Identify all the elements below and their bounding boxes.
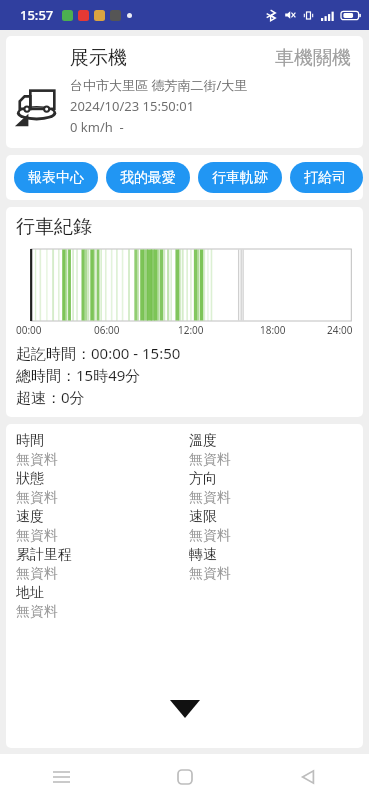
staticText: 行車軌跡 [212,169,268,187]
button[interactable]: Home [123,754,246,800]
staticText: 打給司機 [304,169,349,187]
button[interactable]: 打給司機 [290,162,363,193]
staticText: 總時間：15時49分 [16,365,141,385]
staticText: 溫度 [189,432,217,450]
staticText: 無資料 [16,489,58,507]
staticText: 超速：0分 [16,387,85,407]
staticText: 無資料 [16,451,58,469]
staticText: 06:00 [94,323,120,337]
staticText: 無資料 [16,603,58,621]
staticText: 0 km/h - [70,118,124,136]
staticText: 報表中心 [28,169,84,187]
staticText: 18:00 [260,323,286,337]
staticText: 無資料 [16,527,58,545]
button[interactable]: 我的最愛 [106,162,190,193]
staticText: 無資料 [189,451,231,469]
staticText: 展示機 [70,46,127,70]
button[interactable]: 行車軌跡 [198,162,282,193]
staticText: 累計里程 [16,546,72,564]
staticText: 15:57 [20,6,54,24]
staticText: 轉速 [189,546,217,564]
staticText: 車機關機 [275,46,351,70]
other: Vehicle [14,82,62,130]
staticText: 狀態 [16,470,44,488]
staticText: 24:00 [327,323,353,337]
staticText: 2024/10/23 15:50:01 [70,97,195,115]
button[interactable]: 報表中心 [14,162,98,193]
staticText: 12:00 [178,323,204,337]
staticText: 方向 [189,470,217,488]
staticText: 行車紀錄 [16,215,92,239]
staticText: 無資料 [16,565,58,583]
staticText: 我的最愛 [120,169,176,187]
button[interactable]: Back [246,754,369,800]
staticText: 無資料 [189,527,231,545]
staticText: 00:00 [16,323,42,337]
staticText: 起訖時間：00:00 - 15:50 [16,343,181,363]
other: Expand [170,700,200,718]
staticText: 時間 [16,432,44,450]
staticText: 台中市大里區 德芳南二街/大里 [70,76,248,94]
staticText: 無資料 [189,489,231,507]
staticText: 速限 [189,508,217,526]
staticText: 速度 [16,508,44,526]
button[interactable]: Recents [0,754,123,800]
staticText: 無資料 [189,565,231,583]
staticText: 地址 [16,584,44,602]
